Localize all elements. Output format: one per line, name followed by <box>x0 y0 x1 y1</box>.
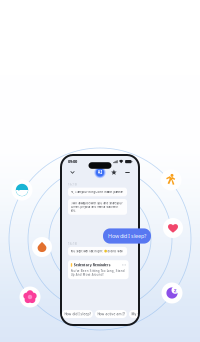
staticText: I will always be with you and share your… <box>71 201 123 212</box>
button[interactable]: Collapse <box>67 167 77 177</box>
staticText: AI <box>97 169 102 175</box>
staticText: z <box>174 286 177 294</box>
staticText: How did I sleep? <box>64 312 90 316</box>
staticText: My sc <box>131 312 141 316</box>
staticText: 16:18 <box>68 242 77 246</box>
button[interactable]: More <box>122 167 132 177</box>
button[interactable]: How did I sleep? <box>62 310 93 318</box>
staticText: You've Been Sitting Too Long, Stand Up A… <box>71 269 125 276</box>
button[interactable]: Favorite <box>109 167 119 177</box>
staticText: 16:18 <box>68 182 77 186</box>
staticText: You slept well last night 🙂 click to vie… <box>71 250 123 253</box>
staticText: Sedentary Reminders <box>74 263 111 267</box>
button[interactable]: How active am I? <box>95 310 127 318</box>
staticText: Hi, I am your RingConn health partner! <box>71 190 124 194</box>
staticText: How did I sleep? <box>108 232 146 240</box>
button[interactable]: My sc <box>129 310 144 318</box>
staticText: 09:00 <box>68 159 77 164</box>
staticText: How active am I? <box>97 312 124 316</box>
